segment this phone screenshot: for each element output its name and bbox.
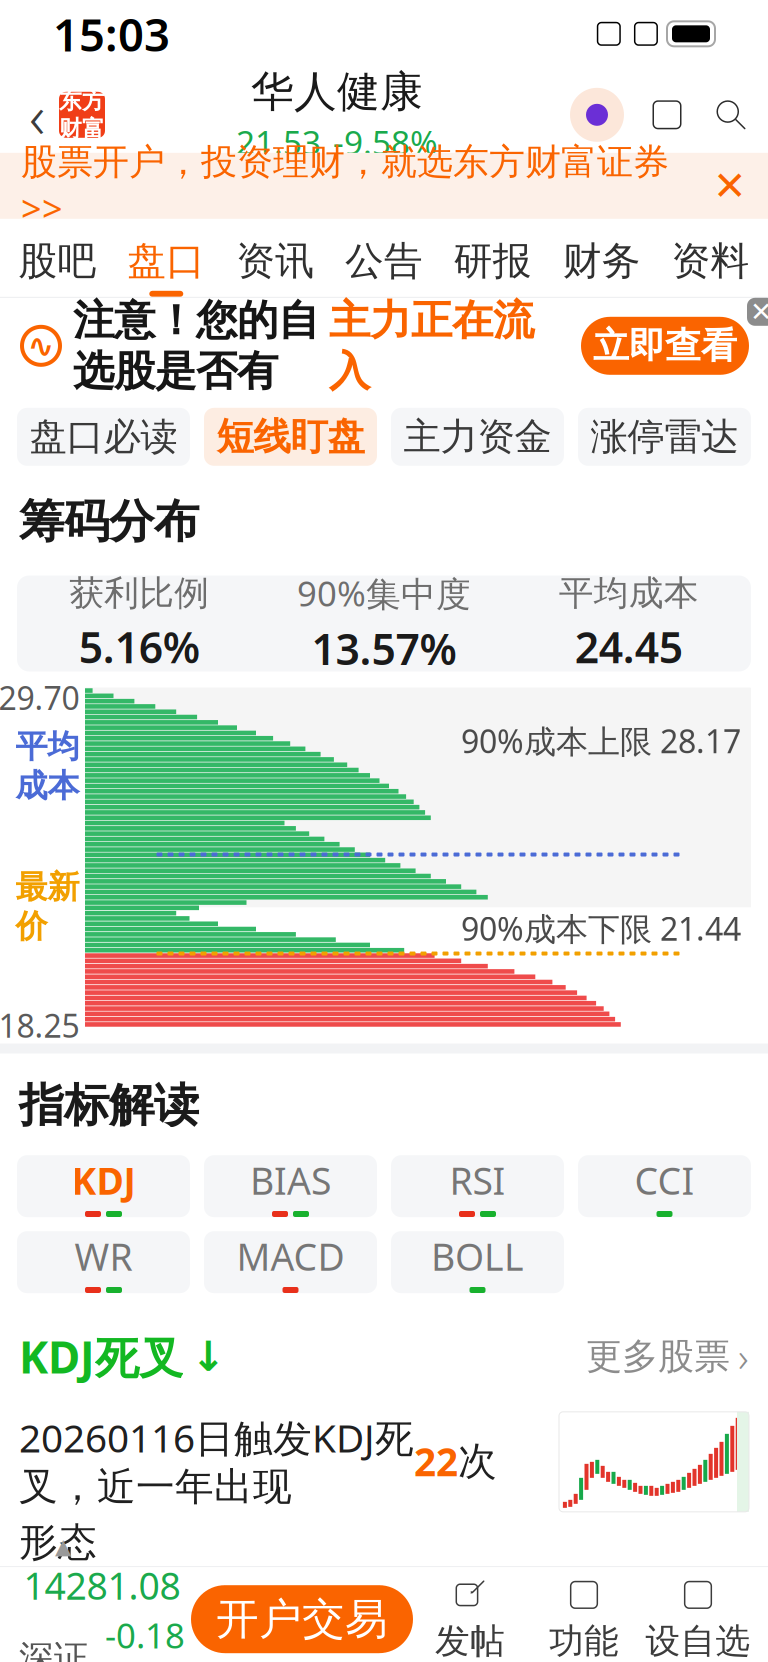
button[interactable]: 功能 <box>527 1576 641 1662</box>
staticText: 平均成本 <box>559 572 699 614</box>
staticText: 功能 <box>549 1620 619 1662</box>
staticText: 18.25 <box>0 1004 79 1047</box>
staticText: 深证 <box>19 1637 89 1662</box>
staticText: ▲ <box>55 1534 71 1558</box>
button[interactable]: WR <box>17 1231 190 1293</box>
button[interactable]: Shenzhen index <box>13 1534 191 1662</box>
staticText: 21.53 <box>236 120 321 164</box>
button[interactable]: CCI <box>578 1155 751 1217</box>
staticText: 股票开户，投资理财，就选东方财富证券>> <box>21 140 669 232</box>
button[interactable]: 盘口 <box>112 219 221 297</box>
button[interactable]: 研报 <box>438 219 547 297</box>
staticText: -0.18% <box>105 1612 185 1662</box>
staticText: 90%成本上限 28.17 <box>461 719 741 762</box>
staticText: ∿ <box>27 328 54 364</box>
button[interactable]: Close ad <box>747 298 768 326</box>
button[interactable]: 开户交易 <box>191 1585 413 1653</box>
button[interactable]: 设自选 <box>641 1576 755 1662</box>
staticText: 立即查看 <box>593 324 737 368</box>
staticText: ✕ <box>713 163 747 208</box>
button[interactable]: 主力资金 <box>391 408 564 466</box>
button[interactable]: MACD <box>204 1231 377 1293</box>
staticText: 注意！您的自选股是否有 <box>73 295 319 397</box>
button[interactable]: BIAS <box>204 1155 377 1217</box>
button[interactable]: Search <box>709 91 753 139</box>
staticText: 研报 <box>454 237 532 285</box>
staticText: 主力正在流入 <box>329 295 534 397</box>
staticText: 90%集中度 <box>297 570 471 616</box>
button[interactable]: BOLL <box>391 1231 564 1293</box>
staticText: BIAS <box>250 1155 331 1205</box>
staticText: 设自选 <box>645 1620 750 1662</box>
button[interactable]: KDJ死叉 <box>19 1327 226 1386</box>
button[interactable]: 资料 <box>656 219 765 297</box>
staticText: RSI <box>449 1155 505 1205</box>
button[interactable]: 财务 <box>547 219 656 297</box>
staticText: 股吧 <box>18 237 96 285</box>
button[interactable]: 公告 <box>330 219 438 297</box>
button[interactable]: Back <box>15 85 59 145</box>
button[interactable]: 股票开户，投资理财，就选东方财富证券>> <box>0 153 768 219</box>
button[interactable]: 立即查看 <box>581 317 749 375</box>
staticText: 平均成本 <box>15 727 79 805</box>
staticText: 次 <box>458 1437 497 1485</box>
staticText: 90%成本下限 21.44 <box>461 907 741 949</box>
staticText: 资料 <box>672 237 750 285</box>
staticText: 最新价 <box>15 867 79 946</box>
staticText: 指标解读 <box>19 1077 199 1133</box>
button[interactable]: 发帖 <box>413 1576 527 1662</box>
button[interactable]: East Money Home <box>59 92 105 138</box>
staticText: 更多股票 <box>586 1334 730 1379</box>
staticText: 公告 <box>345 237 423 285</box>
button[interactable]: 更多股票 <box>586 1330 749 1383</box>
staticText: 20260116日触发KDJ死叉，近一年出现 <box>19 1412 414 1511</box>
button[interactable]: Share <box>645 91 689 139</box>
staticText: ↓ <box>191 1333 226 1380</box>
staticText: ‹ <box>29 74 45 155</box>
staticText: 盘口 <box>127 237 205 285</box>
staticText: KDJ <box>71 1155 135 1205</box>
button[interactable]: AI Assistant <box>569 87 625 143</box>
button[interactable]: 20260116日触发KDJ死叉，近一年出现 <box>0 1386 768 1566</box>
staticText: 涨停雷达 <box>590 414 738 460</box>
staticText: 盘口必读 <box>29 414 177 460</box>
staticText: 24.45 <box>575 618 683 675</box>
staticText: WR <box>74 1231 132 1281</box>
staticText: ✕ <box>750 297 768 327</box>
staticText: -9.58% <box>333 120 438 164</box>
staticText: 资讯 <box>236 237 314 285</box>
staticText: 14281.08 <box>23 1560 180 1610</box>
button[interactable]: RSI <box>391 1155 564 1217</box>
staticText: 形态 <box>19 1519 97 1566</box>
staticText: 短线盯盘 <box>216 414 364 460</box>
staticText: MACD <box>236 1231 344 1281</box>
staticText: 主力资金 <box>403 414 551 460</box>
staticText: 15:03 <box>53 4 170 64</box>
staticText: BOLL <box>431 1231 524 1281</box>
staticText: 29.70 <box>0 676 79 719</box>
staticText: 5.16% <box>79 618 200 675</box>
staticText: 财富 <box>59 115 105 143</box>
staticText: 发帖 <box>435 1620 505 1662</box>
staticText: 财务 <box>563 237 641 285</box>
button[interactable]: 盘口必读 <box>17 408 190 466</box>
button[interactable]: 短线盯盘 <box>204 408 377 466</box>
staticText: KDJ死叉 <box>19 1327 183 1386</box>
button[interactable]: 股吧 <box>3 219 112 297</box>
staticText: 筹码分布 <box>19 494 199 549</box>
button[interactable]: 涨停雷达 <box>578 408 751 466</box>
staticText: 获利比例 <box>69 572 209 614</box>
staticText: 22 <box>414 1436 458 1487</box>
button[interactable]: 资讯 <box>221 219 330 297</box>
staticText: › <box>738 1330 749 1383</box>
staticText: 华人健康 <box>251 65 423 118</box>
button[interactable]: ∿ <box>19 295 581 397</box>
staticText: CCI <box>634 1155 694 1205</box>
staticText: 开户交易 <box>216 1593 388 1645</box>
staticText: 13.57% <box>311 620 456 677</box>
staticText: 东方 <box>59 87 105 115</box>
button[interactable]: KDJ <box>17 1155 190 1217</box>
